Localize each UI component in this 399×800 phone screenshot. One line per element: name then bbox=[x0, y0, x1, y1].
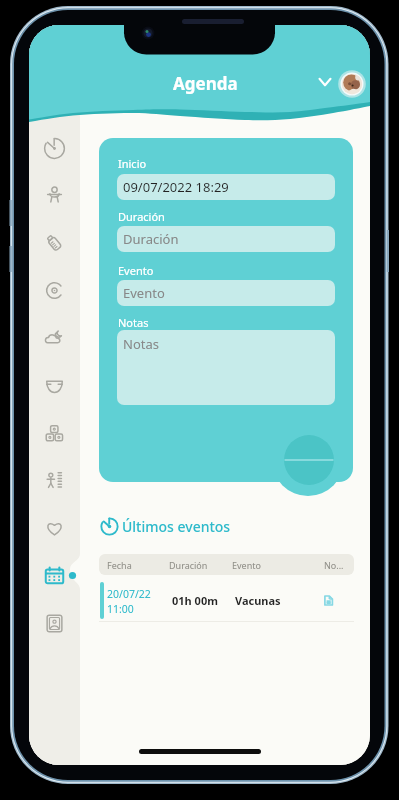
button[interactable]: Timer bbox=[43, 137, 66, 160]
staticText: 01h 00m bbox=[172, 593, 218, 608]
button[interactable]: Bottle bbox=[43, 232, 66, 255]
staticText: Inicio bbox=[118, 156, 147, 171]
button[interactable]: Diaper bbox=[43, 374, 66, 397]
button[interactable]: Save bbox=[284, 435, 334, 485]
staticText: Evento bbox=[123, 284, 165, 302]
staticText: Vacunas bbox=[235, 593, 281, 608]
staticText: Evento bbox=[118, 263, 154, 278]
button[interactable]: Health bbox=[43, 517, 66, 540]
staticText: Notas bbox=[118, 315, 149, 330]
button[interactable]: Profile bbox=[338, 70, 366, 98]
staticText: Duración bbox=[118, 209, 165, 224]
staticText: Últimos eventos bbox=[122, 517, 231, 536]
button[interactable]: 20/07/22 bbox=[99, 579, 354, 621]
button[interactable]: Expand bbox=[312, 69, 338, 95]
staticText: No... bbox=[324, 559, 344, 571]
button[interactable]: Agenda bbox=[43, 564, 66, 587]
button[interactable]: Últimos eventos bbox=[100, 517, 231, 536]
button[interactable]: Photos bbox=[43, 612, 66, 635]
button[interactable]: Sleep bbox=[43, 327, 66, 350]
staticText: Duración bbox=[169, 559, 208, 571]
button[interactable]: Duración bbox=[117, 226, 335, 252]
staticText: Notas bbox=[123, 335, 159, 353]
button[interactable]: Evento bbox=[117, 280, 335, 306]
button[interactable]: Nursing bbox=[43, 279, 66, 302]
staticText: Agenda bbox=[173, 72, 238, 95]
button[interactable]: Toys bbox=[43, 422, 66, 445]
staticText: 20/07/22 bbox=[107, 587, 151, 601]
button[interactable]: Notas bbox=[117, 330, 335, 405]
staticText: 11:00 bbox=[107, 602, 134, 616]
button[interactable]: Growth bbox=[43, 469, 66, 492]
staticText: Duración bbox=[123, 230, 179, 248]
staticText: 09/07/2022 18:29 bbox=[123, 178, 229, 196]
button[interactable]: 09/07/2022 18:29 bbox=[117, 174, 335, 200]
staticText: Fecha bbox=[107, 559, 132, 571]
button[interactable]: Baby bbox=[43, 184, 66, 207]
staticText: Evento bbox=[232, 559, 261, 571]
button[interactable]: Notes bbox=[321, 593, 336, 608]
